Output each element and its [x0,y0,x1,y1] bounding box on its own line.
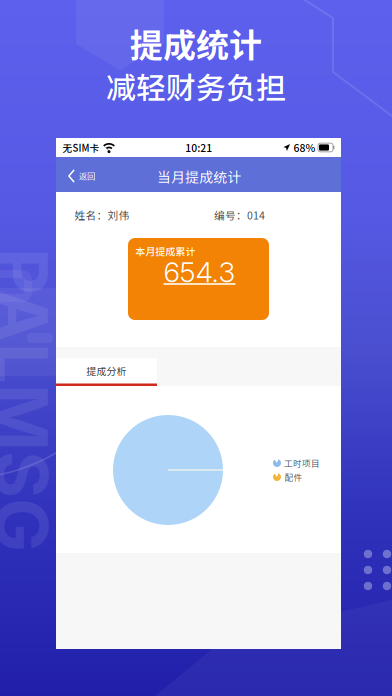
staticText: 本月提成累计 [135,244,195,258]
staticText: 提成统计 [130,19,262,67]
staticText: 工时项目 [284,457,320,469]
staticText: 提成分析 [86,363,126,378]
staticText: 配件 [284,471,302,483]
staticText: 当月提成统计 [157,166,241,186]
staticText: 减轻财务负担 [106,64,286,108]
staticText: 10:21 [185,140,212,155]
staticText: PALMSG [0,356,174,443]
button[interactable]: 提成分析 [56,358,157,386]
staticText: 返回 [79,170,95,182]
staticText: 无SIM卡 [62,140,99,154]
button[interactable]: 返回 [56,158,103,193]
staticText: 姓名：刘伟 [74,207,129,223]
staticText: 编号：014 [214,207,265,223]
staticText: 68% [293,140,315,155]
staticText: 654.3 [163,255,235,289]
